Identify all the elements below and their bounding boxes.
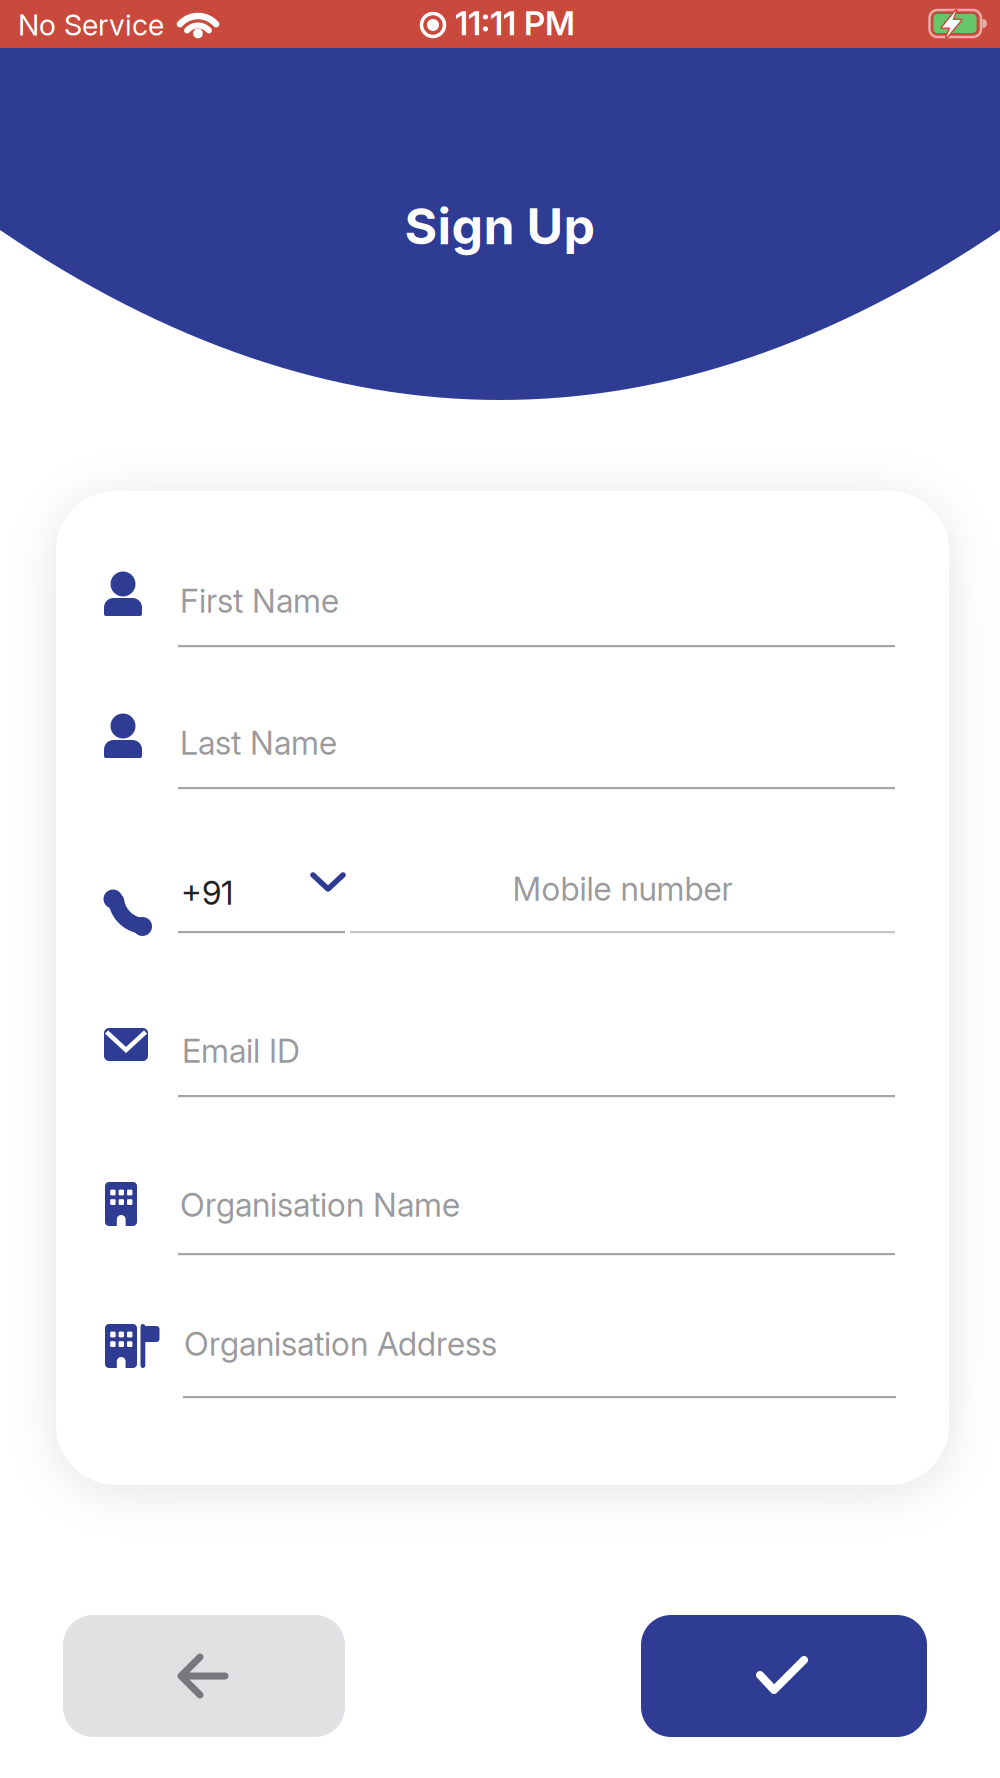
staticText: Sign Up	[404, 196, 595, 256]
staticText: First Name	[180, 581, 339, 621]
button[interactable]: Confirm	[641, 1615, 927, 1737]
staticText: No Service	[18, 7, 164, 43]
button[interactable]: Country code +91	[178, 858, 345, 930]
staticText: +91	[181, 873, 233, 913]
button[interactable]: Back	[63, 1615, 345, 1737]
staticText: Email ID	[182, 1031, 300, 1071]
staticText: Mobile number	[512, 869, 732, 909]
staticText: Organisation Address	[184, 1324, 497, 1364]
staticText: 11:11 PM	[455, 3, 575, 43]
staticText: Last Name	[180, 723, 337, 763]
staticText: Organisation Name	[180, 1185, 460, 1225]
